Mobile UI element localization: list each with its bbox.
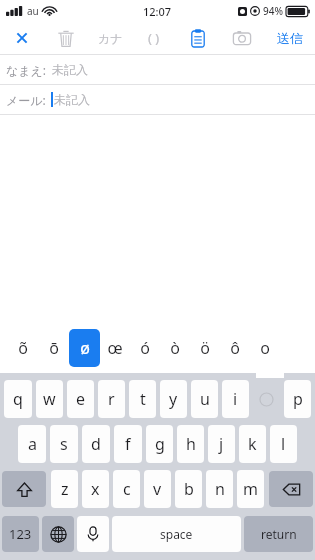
staticText: c — [123, 478, 131, 500]
button[interactable]: ò — [160, 329, 190, 367]
staticText: e — [76, 388, 86, 410]
staticText: 123 — [9, 525, 32, 543]
staticText: b — [184, 478, 194, 500]
button[interactable]: space — [112, 516, 241, 552]
button[interactable]: v — [144, 470, 171, 508]
button[interactable]: カナ — [88, 22, 132, 54]
button[interactable]: t — [129, 380, 156, 418]
staticText: f — [125, 433, 131, 455]
staticText: x — [91, 478, 100, 500]
button[interactable]: Clipboard — [176, 22, 220, 54]
staticText: return — [261, 526, 297, 542]
button[interactable]: œ — [100, 329, 130, 367]
button[interactable]: ( ) — [132, 22, 176, 54]
staticText: õ — [18, 337, 28, 359]
staticText: n — [215, 478, 225, 500]
button[interactable]: l — [270, 425, 297, 463]
staticText: 12:07 — [143, 4, 172, 19]
button[interactable]: Camera — [220, 22, 264, 54]
button[interactable]: Close — [0, 22, 44, 54]
staticText: u — [200, 388, 210, 410]
button[interactable]: r — [98, 380, 125, 418]
button[interactable]: w — [36, 380, 63, 418]
staticText: i — [233, 388, 238, 410]
staticText: ò — [170, 337, 180, 359]
button[interactable]: z — [51, 470, 78, 508]
button[interactable]: k — [239, 425, 266, 463]
staticText: カナ — [98, 31, 123, 46]
staticText: メール: — [6, 92, 46, 108]
staticText: j — [219, 433, 224, 455]
staticText: 送信 — [277, 30, 303, 46]
button[interactable]: y — [160, 380, 187, 418]
staticText: v — [153, 478, 162, 500]
button[interactable]: Dictation — [77, 516, 109, 552]
staticText: l — [281, 433, 286, 455]
button[interactable]: return — [244, 516, 313, 552]
staticText: 94% — [263, 4, 283, 18]
staticText: a — [28, 433, 37, 455]
button[interactable]: e — [67, 380, 94, 418]
button[interactable]: u — [191, 380, 218, 418]
button[interactable]: Delete — [44, 22, 88, 54]
button[interactable]: h — [177, 425, 204, 463]
button[interactable]: 123 — [2, 516, 39, 552]
button[interactable]: a — [18, 425, 46, 463]
button[interactable]: ö — [190, 329, 220, 367]
staticText: ô — [230, 337, 240, 359]
staticText: t — [140, 388, 146, 410]
staticText: ( ) — [148, 29, 160, 47]
button[interactable]: i — [222, 380, 249, 418]
staticText: w — [43, 388, 56, 410]
staticText: g — [155, 433, 165, 455]
button[interactable]: ô — [220, 329, 250, 367]
staticText: 未記入 — [54, 92, 90, 107]
staticText: ö — [200, 337, 210, 359]
button[interactable]: b — [175, 470, 202, 508]
button[interactable]: なまえ: — [0, 55, 315, 84]
staticText: space — [160, 526, 193, 542]
button[interactable]: o — [253, 380, 280, 418]
staticText: h — [186, 433, 196, 455]
button[interactable]: g — [146, 425, 173, 463]
staticText: s — [60, 433, 68, 455]
button[interactable]: Backspace — [269, 471, 313, 507]
button[interactable]: f — [114, 425, 142, 463]
staticText: 未記入 — [52, 62, 88, 77]
staticText: ó — [140, 337, 150, 359]
staticText: y — [169, 388, 178, 410]
button[interactable]: c — [113, 470, 140, 508]
button[interactable]: s — [50, 425, 78, 463]
button[interactable]: ó — [130, 329, 160, 367]
button[interactable]: Shift — [2, 471, 46, 507]
button[interactable]: j — [208, 425, 235, 463]
staticText: au — [27, 4, 39, 18]
button[interactable]: ø — [69, 329, 100, 367]
button[interactable]: q — [4, 380, 32, 418]
button[interactable]: d — [82, 425, 110, 463]
staticText: m — [243, 478, 258, 500]
staticText: なまえ: — [6, 62, 47, 78]
staticText: k — [248, 433, 257, 455]
button[interactable]: o — [250, 329, 280, 367]
staticText: œ — [107, 337, 123, 359]
button[interactable]: n — [206, 470, 233, 508]
button[interactable]: p — [284, 380, 311, 418]
button[interactable]: メール: — [0, 85, 315, 114]
staticText: ø — [80, 337, 90, 359]
staticText: p — [293, 388, 303, 410]
staticText: d — [91, 433, 101, 455]
button[interactable]: ō — [38, 329, 69, 367]
staticText: r — [108, 388, 115, 410]
staticText: q — [13, 388, 23, 410]
staticText: z — [61, 478, 69, 500]
button[interactable]: 送信 — [264, 22, 315, 54]
button[interactable]: m — [237, 470, 264, 508]
button[interactable]: õ — [7, 329, 38, 367]
staticText: ō — [49, 337, 59, 359]
button[interactable]: Switch keyboard — [42, 516, 74, 552]
staticText: o — [260, 337, 270, 359]
button[interactable]: x — [82, 470, 109, 508]
